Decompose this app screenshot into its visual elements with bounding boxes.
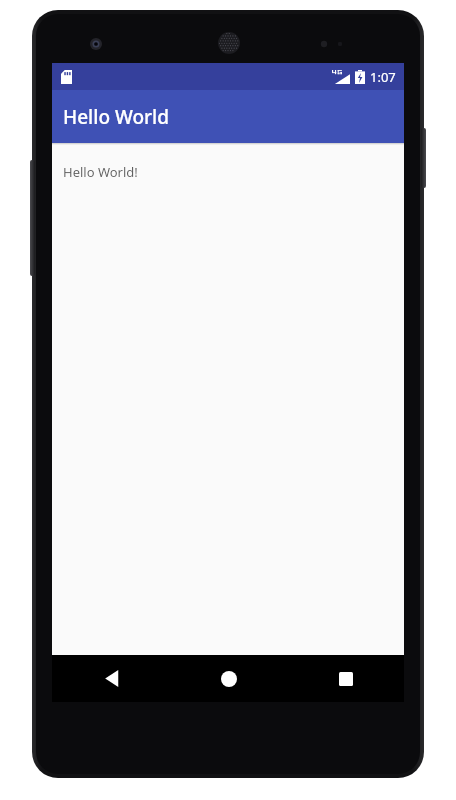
button[interactable]: Hello World [52,90,404,143]
staticText: 1:07 [370,68,396,86]
button[interactable]: Back [52,655,170,702]
button[interactable]: Volume [30,160,35,276]
button[interactable]: Power [421,128,426,188]
button[interactable]: Home [170,655,287,702]
staticText: Hello World [63,104,169,130]
staticText: Hello World! [63,163,138,181]
button[interactable]: Recent apps [287,655,404,702]
